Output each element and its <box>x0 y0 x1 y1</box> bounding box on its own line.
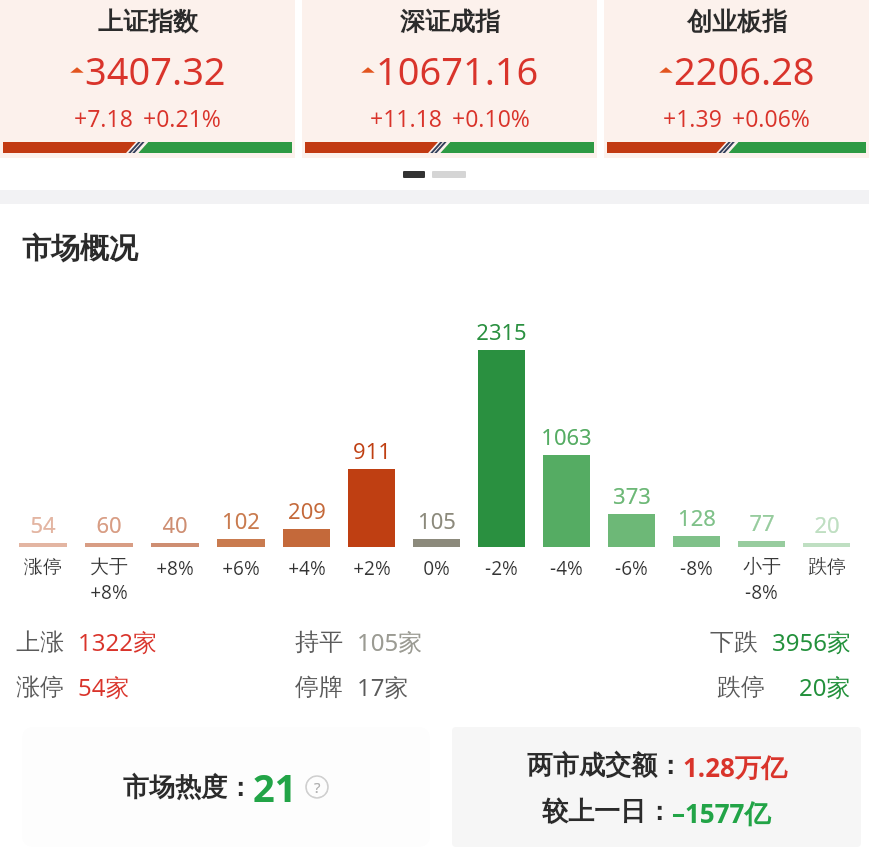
staticText: 市场热度： <box>123 771 253 804</box>
staticText: 跌停 <box>717 672 765 702</box>
staticText: 2206.28 <box>674 44 815 96</box>
staticText: 128 <box>678 502 716 532</box>
staticText: 21 <box>253 761 297 813</box>
button[interactable]: 深证成指 <box>302 0 597 158</box>
button[interactable]: 市场热度： <box>22 727 430 847</box>
staticText: 20家 <box>799 670 851 703</box>
staticText: 77 <box>749 507 775 537</box>
staticText: -6% <box>615 555 648 581</box>
staticText: 涨停 <box>16 672 64 702</box>
staticText: 54 <box>30 509 56 539</box>
staticText: 373 <box>613 480 651 510</box>
staticText: 涨停 <box>24 555 62 579</box>
staticText: +6% <box>222 555 260 581</box>
staticText: 市场概况 <box>22 230 138 267</box>
staticText: -4% <box>550 555 583 581</box>
staticText: 3956家 <box>772 625 851 658</box>
staticText: 105家 <box>357 625 423 658</box>
staticText: 105 <box>418 505 456 535</box>
staticText: 2315 <box>476 316 527 346</box>
staticText: +0.10% <box>452 102 530 133</box>
staticText: 3407.32 <box>85 44 226 96</box>
staticText: 上涨 <box>16 627 64 657</box>
staticText: 创业板指 <box>687 6 787 37</box>
staticText: 209 <box>288 495 326 525</box>
staticText: +11.18 <box>370 102 442 133</box>
staticText: 持平 <box>295 627 343 657</box>
staticText: -2% <box>485 555 518 581</box>
staticText: 大于 <box>90 555 128 579</box>
button[interactable]: 两市成交额： <box>452 727 861 847</box>
staticText: +1.39 <box>663 102 722 133</box>
staticText: 40 <box>162 509 188 539</box>
button[interactable]: 上证指数 <box>0 0 295 158</box>
staticText: 上证指数 <box>98 6 198 37</box>
staticText: 17家 <box>357 670 409 703</box>
staticText: ? <box>314 777 321 797</box>
staticText: +8% <box>156 555 194 581</box>
button[interactable]: 创业板指 <box>604 0 869 158</box>
staticText: 1063 <box>541 421 592 451</box>
staticText: –1577亿 <box>672 795 771 831</box>
staticText: 10671.16 <box>376 44 539 96</box>
staticText: 60 <box>96 509 122 539</box>
button[interactable]: Help <box>305 775 329 799</box>
staticText: 1.28万亿 <box>683 749 787 785</box>
staticText: 下跌 <box>710 627 758 657</box>
staticText: -8% <box>745 579 778 605</box>
staticText: 911 <box>353 435 391 465</box>
staticText: 深证成指 <box>400 6 500 37</box>
staticText: +4% <box>288 555 326 581</box>
staticText: -8% <box>680 555 713 581</box>
staticText: +0.06% <box>732 102 810 133</box>
staticText: 0% <box>423 555 450 581</box>
staticText: +2% <box>353 555 391 581</box>
staticText: +0.21% <box>143 102 221 133</box>
staticText: 停牌 <box>295 672 343 702</box>
staticText: 两市成交额： <box>527 749 683 782</box>
staticText: 102 <box>222 505 260 535</box>
staticText: +7.18 <box>74 102 133 133</box>
staticText: +8% <box>90 579 128 605</box>
staticText: 小于 <box>743 555 781 579</box>
staticText: 较上一日： <box>542 795 672 828</box>
staticText: 跌停 <box>808 555 846 579</box>
staticText: 1322家 <box>78 625 157 658</box>
staticText: 20 <box>814 509 840 539</box>
staticText: 54家 <box>78 670 130 703</box>
